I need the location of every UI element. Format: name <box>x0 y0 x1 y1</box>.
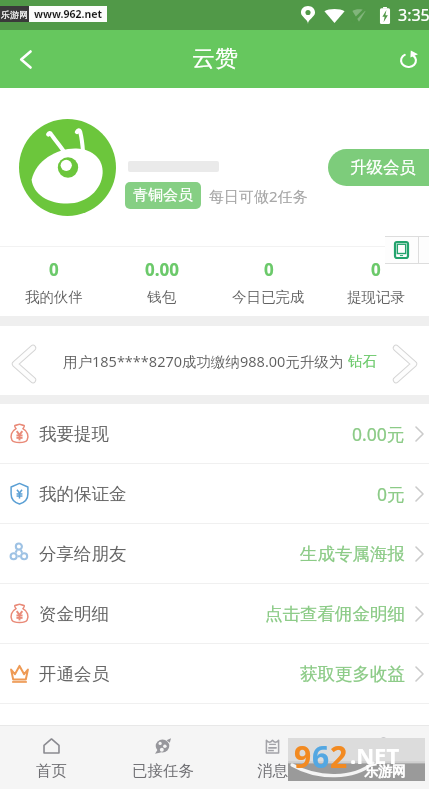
staticText: 提现账号 <box>39 723 109 745</box>
staticText: 0.00 <box>145 258 179 281</box>
staticText: 0元 <box>377 482 405 506</box>
staticText: 绑定提现信息 <box>300 723 405 745</box>
button[interactable]: 0.00 <box>108 258 215 306</box>
staticText: 我要提现 <box>39 423 109 445</box>
staticText: 0.00元 <box>352 422 405 446</box>
staticText: 首页 <box>36 761 67 781</box>
staticText: 2 <box>330 736 348 777</box>
staticText: 青铜会员 <box>133 186 193 205</box>
button[interactable]: 已接任务 <box>109 726 216 789</box>
staticText: 用户185****8270成功缴纳988.00元升级为 <box>63 351 348 371</box>
button[interactable]: 我的 <box>330 726 429 789</box>
staticText: 已接任务 <box>132 761 194 781</box>
button[interactable]: 资金明细 <box>0 584 429 643</box>
button[interactable]: 我要提现 <box>0 404 429 463</box>
staticText: 分享给朋友 <box>39 543 127 565</box>
button[interactable]: Screen recorder <box>385 236 429 264</box>
button[interactable]: 升级会员 <box>328 149 429 186</box>
staticText: 云赞 <box>192 44 238 73</box>
staticText: 6 <box>312 736 330 777</box>
staticText: 乐游网 <box>364 763 406 781</box>
staticText: 0 <box>371 258 381 281</box>
staticText: 我的 <box>368 761 399 781</box>
staticText: www.962.net <box>34 7 103 21</box>
staticText: 我的伙伴 <box>25 288 83 306</box>
staticText: 升级会员 <box>350 157 416 178</box>
button[interactable]: 开通会员 <box>0 644 429 703</box>
button[interactable]: 提现账号 <box>0 704 429 763</box>
button[interactable]: 我的保证金 <box>0 464 429 523</box>
staticText: .NET <box>350 740 400 770</box>
staticText: 点击查看佣金明细 <box>265 603 405 625</box>
button[interactable]: 分享给朋友 <box>0 524 429 583</box>
button[interactable]: Next <box>390 343 420 385</box>
staticText: 0 <box>49 258 59 281</box>
button[interactable]: 0 <box>215 258 322 306</box>
button[interactable]: Previous <box>9 343 39 385</box>
button[interactable]: 青铜会员 <box>125 182 201 209</box>
staticText: 9 <box>294 736 312 777</box>
staticText: 钱包 <box>147 288 176 306</box>
button[interactable]: Avatar <box>19 119 116 216</box>
button[interactable]: 0 <box>322 258 429 306</box>
staticText: 每日可做2任务 <box>209 186 308 206</box>
button[interactable]: Back <box>0 30 52 88</box>
staticText: 提现记录 <box>347 288 405 306</box>
staticText: 0 <box>264 258 274 281</box>
staticText: 开通会员 <box>39 663 109 685</box>
staticText: 钻石 <box>348 352 377 370</box>
staticText: 消息 <box>257 761 288 781</box>
staticText: 资金明细 <box>39 603 109 625</box>
staticText: 生成专属海报 <box>300 543 405 565</box>
staticText: 今日已完成 <box>232 288 305 306</box>
staticText: 获取更多收益 <box>300 663 405 685</box>
staticText: 我的保证金 <box>39 483 127 505</box>
button[interactable]: 0 <box>0 258 108 306</box>
button[interactable]: 消息 <box>219 726 326 789</box>
button[interactable]: 首页 <box>0 726 105 789</box>
button[interactable]: Refresh <box>387 30 429 88</box>
staticText: 3:35 <box>398 4 429 26</box>
staticText: 乐游网 <box>1 9 28 20</box>
